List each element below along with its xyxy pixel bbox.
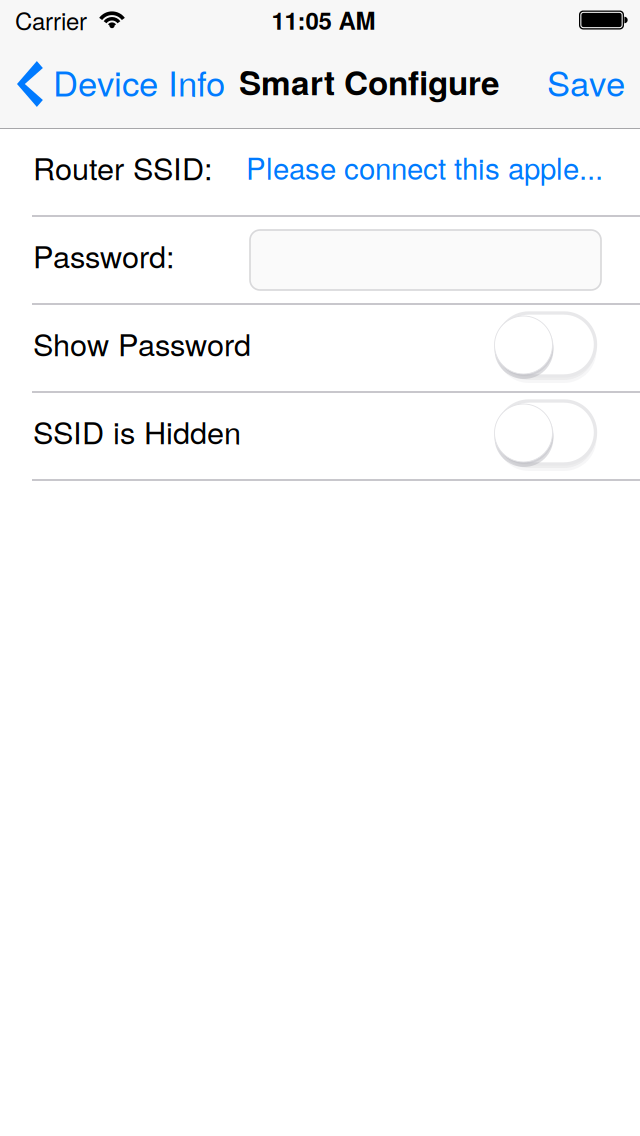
button[interactable]: Password field [250, 230, 601, 290]
staticText: SSID is Hidden [33, 409, 241, 453]
staticText: Router SSID: [33, 145, 213, 189]
button[interactable]: Show Password [0, 305, 640, 391]
staticText: Carrier [15, 3, 87, 37]
staticText: Device Info [53, 57, 225, 106]
button[interactable]: Device Info [0, 40, 230, 128]
staticText: Show Password [33, 321, 251, 365]
staticText: Please connect this apple... [246, 146, 603, 188]
button[interactable]: Router SSID: [0, 129, 640, 215]
staticText: 11:05 AM [271, 3, 375, 37]
staticText: Smart Configure [239, 58, 500, 105]
staticText: Save [547, 57, 625, 106]
button[interactable]: SSID is Hidden [0, 393, 640, 479]
button[interactable]: Save [527, 40, 640, 128]
staticText: Password: [33, 233, 175, 277]
